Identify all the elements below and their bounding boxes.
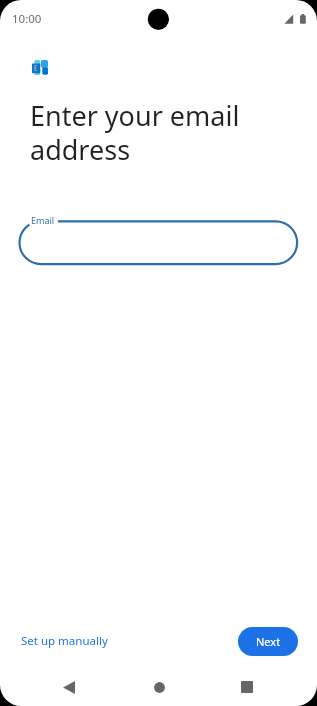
- button[interactable]: Home: [139, 667, 179, 706]
- button[interactable]: Back: [49, 667, 89, 706]
- button[interactable]: Set up manually: [13, 629, 116, 653]
- staticText: Enter your email address: [30, 97, 240, 168]
- button[interactable]: Next: [238, 627, 298, 656]
- button[interactable]: Recent apps: [227, 667, 267, 706]
- staticText: Next: [256, 634, 281, 649]
- staticText: Email: [31, 214, 55, 226]
- staticText: Set up manually: [21, 633, 108, 649]
- staticText: 10:00: [12, 11, 42, 27]
